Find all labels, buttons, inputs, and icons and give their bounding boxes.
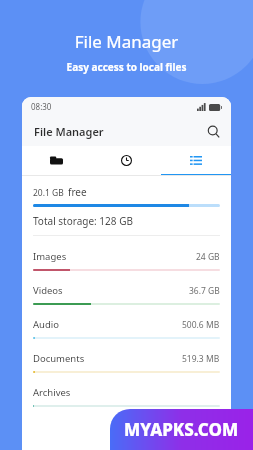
staticText: Documents — [33, 352, 85, 365]
button[interactable]: Files — [22, 146, 91, 174]
button[interactable]: Recent — [91, 146, 161, 174]
button[interactable]: Storage — [161, 146, 231, 174]
staticText: 08:30 — [31, 101, 52, 112]
staticText: Total storage: 128 GB — [33, 214, 133, 228]
staticText: Videos — [33, 284, 63, 297]
staticText: Images — [33, 250, 67, 263]
staticText: MYAPKS.COM — [124, 418, 239, 441]
button[interactable]: Audio — [22, 311, 231, 345]
button[interactable]: Search — [202, 120, 224, 142]
staticText: File Manager — [0, 30, 253, 53]
staticText: File Manager — [34, 124, 104, 139]
button[interactable]: Images — [22, 243, 231, 277]
staticText: Easy access to local files — [0, 60, 253, 74]
staticText: 500.6 MB — [182, 319, 220, 331]
staticText: 519.3 MB — [182, 353, 220, 365]
button[interactable]: Videos — [22, 277, 231, 311]
staticText: 20.1 GB — [33, 187, 64, 199]
button[interactable]: 20.1 GB — [22, 176, 231, 243]
button[interactable]: Archives — [22, 379, 231, 413]
staticText: Archives — [33, 386, 71, 399]
staticText: 36.7 GB — [189, 285, 220, 297]
staticText: Audio — [33, 318, 59, 331]
staticText: free — [68, 185, 87, 199]
button[interactable]: Documents — [22, 345, 231, 379]
staticText: 24 GB — [196, 251, 220, 263]
